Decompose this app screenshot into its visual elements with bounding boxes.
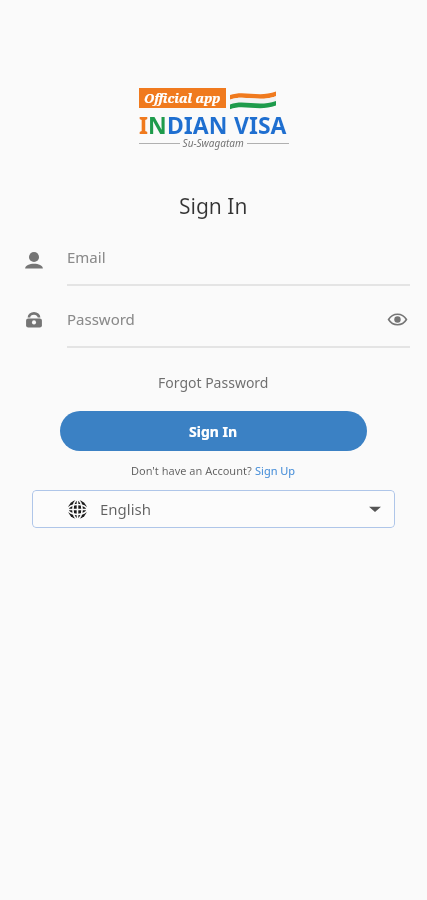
staticText: Email bbox=[67, 247, 410, 267]
staticText: English bbox=[100, 499, 369, 519]
staticText: Password bbox=[67, 309, 384, 329]
button[interactable]: Sign Up bbox=[255, 463, 296, 478]
staticText: I bbox=[139, 109, 148, 140]
staticText: Sign In bbox=[179, 192, 248, 221]
staticText: Sign Up bbox=[255, 463, 296, 478]
staticText: DIAN bbox=[167, 109, 234, 140]
staticText: Sign In bbox=[189, 422, 238, 441]
button[interactable]: Show password bbox=[384, 306, 410, 332]
staticText: N bbox=[148, 109, 167, 140]
button[interactable]: Password bbox=[22, 306, 410, 348]
button[interactable]: Email bbox=[22, 247, 410, 286]
button[interactable]: Sign In bbox=[60, 411, 367, 451]
staticText: Su-Swagatam bbox=[180, 136, 247, 150]
button[interactable]: English bbox=[32, 490, 395, 528]
staticText: Forgot Password bbox=[158, 373, 269, 392]
staticText: Official app bbox=[144, 89, 221, 107]
button[interactable]: Forgot Password bbox=[150, 370, 277, 395]
staticText: Don't have an Account? bbox=[131, 463, 255, 478]
staticText: VISA bbox=[234, 109, 287, 140]
